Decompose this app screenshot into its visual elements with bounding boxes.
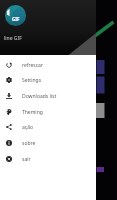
button[interactable]: About (0, 135, 96, 151)
other: Downloads (6, 93, 12, 99)
staticText: GIF (12, 16, 20, 22)
button[interactable]: Refresh (0, 57, 96, 73)
staticText: ação (22, 124, 34, 131)
other: Settings (6, 77, 12, 83)
button[interactable]: Settings (0, 72, 96, 88)
other: Refresh (6, 62, 12, 68)
staticText: sobre (22, 140, 36, 147)
button[interactable]: Action (0, 119, 96, 135)
staticText: refrescar (22, 62, 43, 69)
button[interactable]: Downloads (0, 88, 96, 104)
staticText: sair (22, 156, 31, 163)
other: Action (6, 124, 12, 130)
staticText: line GIF (4, 35, 22, 42)
staticText: Downloads list (22, 93, 57, 100)
other: Exit (6, 156, 12, 162)
other: Theming (6, 109, 12, 115)
other: About (6, 140, 12, 146)
staticText: Theming (22, 109, 43, 116)
staticText: Settings (22, 77, 42, 84)
button[interactable]: Theming (0, 104, 96, 120)
button[interactable]: Exit (0, 151, 96, 167)
